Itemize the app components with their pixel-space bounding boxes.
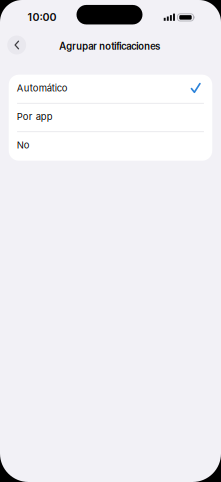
button[interactable]: Por app xyxy=(9,103,212,132)
button[interactable]: Atrás xyxy=(7,35,26,54)
button[interactable]: Automático xyxy=(9,75,212,103)
staticText: Automático xyxy=(17,82,68,94)
staticText: 10:00 xyxy=(27,11,56,24)
staticText: Por app xyxy=(17,111,53,122)
button[interactable]: No xyxy=(9,132,212,160)
staticText: Agrupar notificaciones xyxy=(59,40,160,52)
staticText: No xyxy=(17,139,30,151)
